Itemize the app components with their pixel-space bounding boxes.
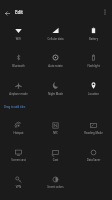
staticText: Cast: [37, 158, 74, 162]
staticText: Data Saver: [75, 158, 112, 162]
button[interactable]: Auto rotate: [37, 50, 74, 68]
button[interactable]: Invert colors: [37, 172, 74, 190]
staticText: NFC: [37, 131, 74, 135]
staticText: Airplane mode: [0, 92, 37, 96]
button[interactable]: Cellular data: [37, 23, 74, 41]
button[interactable]: Reading Mode: [75, 118, 112, 136]
staticText: Auto rotate: [37, 64, 74, 68]
button[interactable]: Edit: [15, 5, 39, 19]
staticText: Edit: [15, 9, 24, 15]
staticText: Night Mode: [37, 92, 74, 96]
button[interactable]: NFC: [37, 118, 74, 136]
staticText: Battery: [75, 37, 112, 41]
staticText: Invert colors: [37, 185, 74, 189]
staticText: Hotspot: [0, 131, 37, 135]
staticText: Reading Mode: [75, 131, 112, 135]
button[interactable]: Location: [75, 78, 112, 96]
button[interactable]: Night Mode: [37, 78, 74, 96]
staticText: Cellular data: [37, 37, 74, 41]
button[interactable]: Airplane mode: [0, 78, 37, 96]
button[interactable]: Screen cast: [0, 145, 37, 163]
staticText: VPN: [0, 185, 37, 189]
button[interactable]: VPN: [0, 172, 37, 190]
staticText: Drag to add tiles: [4, 105, 26, 109]
staticText: Location: [75, 92, 112, 96]
staticText: Flashlight: [75, 64, 112, 68]
button[interactable]: Back: [0, 6, 14, 20]
button[interactable]: More options: [98, 5, 112, 19]
button[interactable]: Bluetooth: [0, 50, 37, 68]
button[interactable]: Hotspot: [0, 118, 37, 136]
button[interactable]: Data Saver: [75, 145, 112, 163]
staticText: WiFi: [0, 37, 37, 41]
button[interactable]: WiFi: [0, 23, 37, 41]
button[interactable]: Flashlight: [75, 50, 112, 68]
button[interactable]: Battery: [75, 23, 112, 41]
staticText: Bluetooth: [0, 64, 37, 68]
button[interactable]: Cast: [37, 145, 74, 163]
staticText: Screen cast: [0, 158, 37, 162]
